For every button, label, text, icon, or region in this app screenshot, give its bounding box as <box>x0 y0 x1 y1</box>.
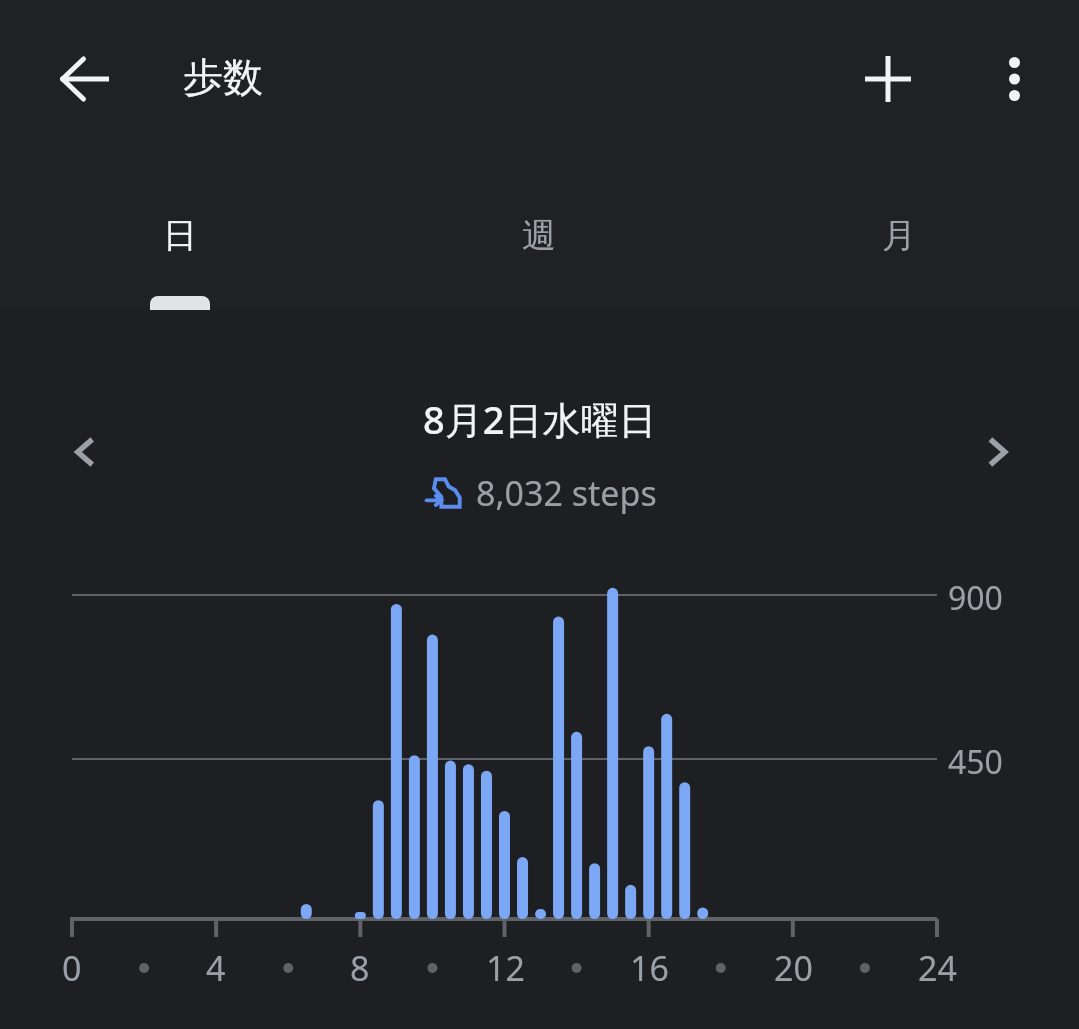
staticText: 450 <box>948 740 1003 784</box>
staticText: 0 <box>62 945 82 991</box>
staticText: 12 <box>486 945 525 991</box>
button[interactable]: Add <box>851 42 925 116</box>
button[interactable]: More options <box>977 42 1051 116</box>
staticText: 週 <box>522 214 556 257</box>
button[interactable]: Back <box>48 42 122 116</box>
staticText: 歩数 <box>183 52 263 102</box>
button[interactable]: 週 <box>359 190 719 280</box>
button[interactable]: Next day <box>960 415 1034 489</box>
staticText: 8月2日水曜日 <box>423 393 657 445</box>
button[interactable]: 月 <box>719 190 1079 280</box>
staticText: 4 <box>206 945 226 991</box>
staticText: 8 <box>350 945 370 991</box>
staticText: 900 <box>948 576 1003 620</box>
staticText: 8,032 steps <box>476 470 657 516</box>
staticText: 月 <box>882 214 916 257</box>
staticText: 24 <box>918 945 957 991</box>
staticText: 16 <box>630 945 669 991</box>
staticText: 20 <box>774 945 813 991</box>
button[interactable]: 日 <box>0 190 359 280</box>
button[interactable]: Previous day <box>48 415 122 489</box>
staticText: 日 <box>163 214 197 257</box>
